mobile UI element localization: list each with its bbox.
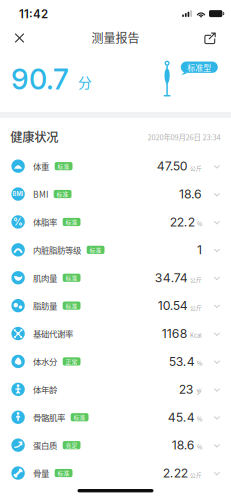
staticText: 测量报告 (91, 29, 139, 46)
staticText: 10.54 (158, 298, 188, 313)
button[interactable]: 基础代谢率 (0, 320, 231, 347)
button[interactable]: 体水分 (0, 347, 231, 375)
staticText: 标准型 (187, 61, 211, 73)
staticText: % (197, 219, 202, 228)
button[interactable]: 体重 (0, 152, 231, 180)
staticText: 18.6 (179, 187, 202, 201)
staticText: 肌肉量 (33, 272, 57, 284)
staticText: 45.4 (168, 410, 195, 425)
staticText: 11:42 (19, 7, 48, 21)
button[interactable]: 内脏脂肪等级 (0, 236, 231, 264)
staticText: 体年龄 (33, 383, 57, 395)
staticText: 公斤 (190, 470, 202, 479)
staticText: 充足 (66, 441, 78, 449)
staticText: 90.7 (11, 62, 69, 96)
staticText: % (197, 359, 202, 367)
staticText: 分 (78, 72, 92, 92)
staticText: % (197, 443, 202, 451)
button[interactable]: % (0, 208, 231, 236)
staticText: 23 (179, 382, 194, 397)
button[interactable]: 蛋白质 (0, 431, 231, 459)
button[interactable]: 骨骼肌率 (0, 403, 231, 431)
button[interactable]: 脂肪量 (0, 292, 231, 320)
button[interactable]: 体年龄 (0, 375, 231, 403)
staticText: 47.50 (157, 159, 188, 173)
staticText: 22.2 (170, 214, 195, 229)
staticText: 骨量 (33, 467, 49, 479)
button[interactable]: Close (5, 26, 33, 50)
staticText: 标准 (90, 246, 102, 254)
staticText: 正常 (66, 357, 78, 366)
staticText: Kcal (190, 331, 202, 339)
staticText: 1 (197, 242, 202, 257)
staticText: 体重 (33, 160, 49, 172)
staticText: 1168 (162, 326, 188, 341)
staticText: 脂肪量 (33, 300, 57, 312)
staticText: % (13, 216, 23, 228)
staticText: % (197, 415, 202, 423)
staticText: 2.22 (163, 466, 188, 480)
staticText: 公斤 (190, 303, 202, 312)
staticText: 标准 (57, 190, 69, 198)
staticText: 53.4 (169, 354, 195, 369)
staticText: 岁 (196, 387, 202, 395)
staticText: 标准 (58, 162, 70, 170)
staticText: 标准 (66, 273, 78, 282)
staticText: BMI (13, 191, 24, 197)
staticText: 标准 (66, 218, 78, 226)
staticText: 标准 (66, 301, 78, 310)
staticText: 基础代谢率 (33, 327, 73, 340)
staticText: 内脏脂肪等级 (33, 244, 81, 256)
staticText: 骨骼肌率 (33, 411, 65, 423)
staticText: 体水分 (33, 355, 57, 368)
staticText: 标准 (74, 413, 86, 421)
staticText: 公斤 (190, 164, 202, 172)
staticText: 体脂率 (33, 216, 57, 228)
staticText: 蛋白质 (33, 439, 57, 451)
staticText: 34.74 (155, 270, 188, 285)
staticText: 健康状况 (10, 128, 58, 145)
staticText: 标准 (58, 469, 70, 477)
staticText: 公斤 (190, 275, 202, 284)
staticText: 2020年09月26日 23:34 (147, 132, 220, 142)
button[interactable]: Share (198, 26, 222, 50)
button[interactable]: 肌肉量 (0, 264, 231, 292)
button[interactable]: BMI (0, 180, 231, 208)
staticText: 18.6 (172, 438, 195, 452)
button[interactable]: 骨量 (0, 459, 231, 487)
staticText: BMI (33, 188, 48, 200)
